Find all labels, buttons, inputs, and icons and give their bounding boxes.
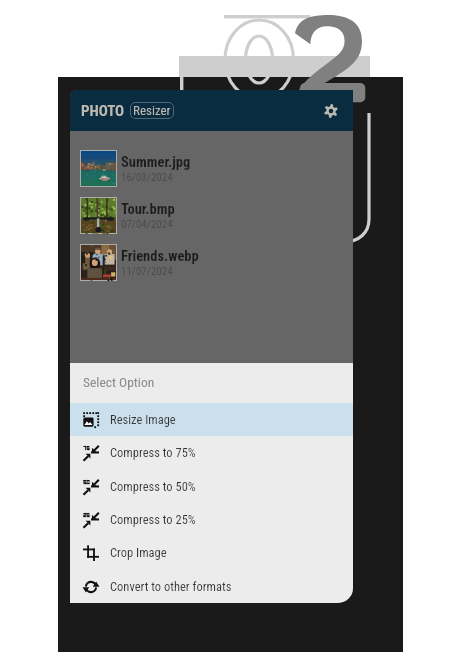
staticText: Compress to 75% — [110, 445, 196, 460]
button[interactable]: Compress to 25% — [70, 503, 353, 536]
button[interactable]: Resize Image — [70, 403, 353, 436]
staticText: PHOTO — [81, 102, 125, 120]
button[interactable]: Convert to other formats — [70, 569, 353, 603]
staticText: Convert to other formats — [110, 579, 232, 594]
staticText: Resizer — [133, 103, 171, 118]
button[interactable]: Compress to 75% — [70, 436, 353, 469]
button[interactable]: Tour.bmp — [70, 192, 353, 239]
button[interactable]: Summer.jpg — [70, 145, 353, 192]
staticText: Friends.webp — [121, 248, 199, 265]
staticText: Crop Image — [110, 545, 167, 560]
staticText: Select Option — [83, 374, 155, 390]
button[interactable]: Settings — [317, 97, 345, 125]
staticText: 16/03/2024 — [121, 171, 173, 184]
staticText: Summer.jpg — [121, 154, 191, 171]
button[interactable]: Friends.webp — [70, 239, 353, 286]
staticText: Resize Image — [110, 412, 176, 427]
button[interactable]: Compress to 50% — [70, 469, 353, 503]
staticText: Compress to 25% — [110, 512, 196, 527]
staticText: Compress to 50% — [110, 479, 196, 494]
button[interactable]: Crop Image — [70, 536, 353, 569]
staticText: 07/04/2024 — [121, 218, 173, 231]
staticText: 11/07/2024 — [121, 265, 173, 278]
staticText: Tour.bmp — [121, 201, 175, 218]
